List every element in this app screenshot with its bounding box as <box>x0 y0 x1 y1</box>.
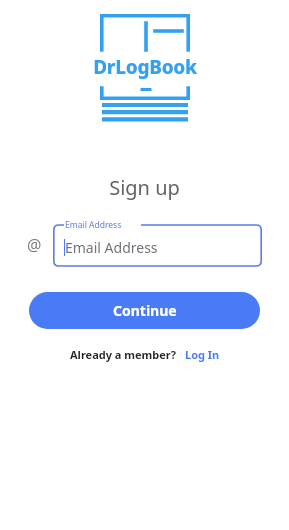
staticText: Email Address <box>65 219 122 231</box>
button[interactable]: Continue <box>29 292 260 329</box>
other: Email <box>24 234 44 254</box>
staticText: Already a member? <box>70 347 176 362</box>
button[interactable]: Log In <box>185 347 220 362</box>
staticText: @ <box>27 234 42 254</box>
staticText: Email Address <box>65 238 158 257</box>
staticText: Continue <box>113 301 177 320</box>
staticText: DrLogBook <box>90 54 200 80</box>
button[interactable]: Email Address <box>53 218 262 270</box>
staticText: Log In <box>185 347 220 362</box>
staticText: Sign up <box>109 174 180 201</box>
